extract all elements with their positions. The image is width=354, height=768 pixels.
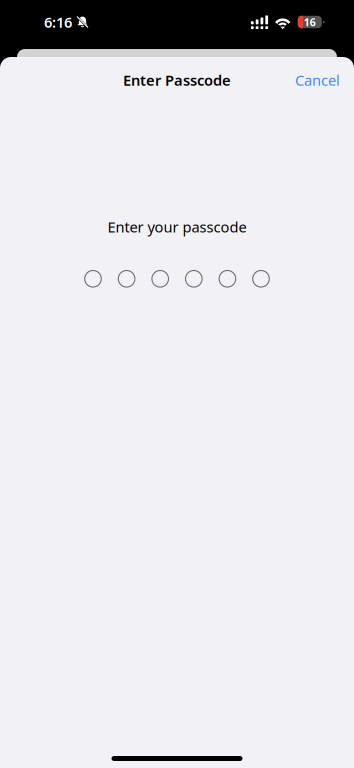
button[interactable]: Cancel: [280, 60, 354, 100]
staticText: 6:16: [44, 12, 72, 32]
staticText: Cancel: [295, 70, 340, 90]
staticText: Enter your passcode: [107, 217, 246, 236]
staticText: 16: [304, 15, 316, 29]
staticText: Enter Passcode: [123, 70, 231, 90]
